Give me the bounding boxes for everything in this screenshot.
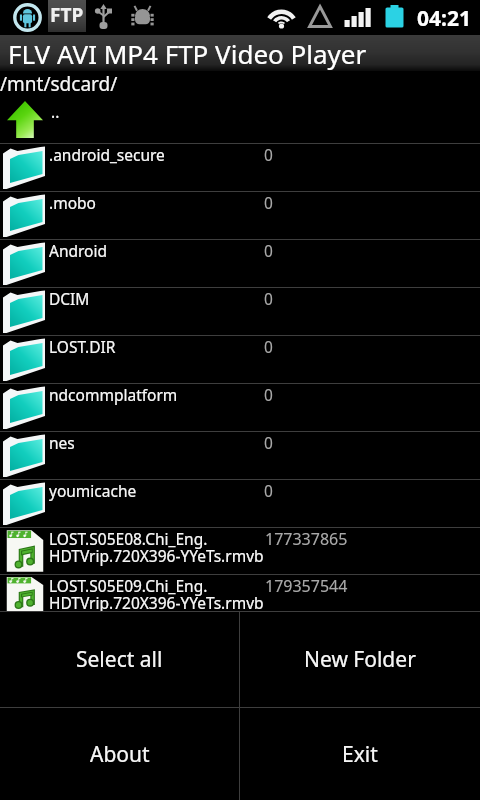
staticText: 0: [264, 384, 273, 405]
staticText: LOST.DIR: [49, 336, 116, 357]
staticText: ..: [51, 101, 60, 122]
staticText: .mobo: [49, 192, 96, 213]
other: FTP service running: [13, 3, 42, 32]
other: USB connected: [95, 4, 112, 29]
staticText: 0: [264, 336, 273, 357]
button[interactable]: ndcommplatform: [0, 384, 480, 432]
staticText: youmicache: [49, 480, 137, 501]
staticText: /mnt/sdcard/: [0, 71, 118, 96]
staticText: nes: [49, 432, 75, 453]
button[interactable]: youmicache: [0, 480, 480, 528]
button[interactable]: New Folder: [240, 612, 480, 707]
other: USB debugging: [131, 5, 154, 27]
staticText: 179357544: [265, 575, 348, 597]
staticText: 0: [264, 144, 273, 165]
staticText: New Folder: [304, 645, 416, 674]
button[interactable]: Select all: [0, 612, 239, 707]
button[interactable]: Exit: [240, 708, 480, 800]
button[interactable]: LOST.S05E08.Chi_Eng.: [0, 528, 480, 575]
staticText: Exit: [342, 740, 378, 769]
staticText: Select all: [76, 645, 163, 674]
staticText: FLV AVI MP4 FTP Video Player: [8, 36, 367, 71]
staticText: 177337865: [265, 528, 348, 550]
button[interactable]: .mobo: [0, 192, 480, 240]
other: Wi-Fi: [265, 2, 299, 30]
button[interactable]: LOST.DIR: [0, 336, 480, 384]
staticText: .android_secure: [49, 144, 165, 165]
other: GPS: [307, 4, 333, 30]
staticText: About: [90, 740, 150, 769]
staticText: Android: [49, 240, 108, 261]
staticText: 0: [264, 480, 273, 501]
button[interactable]: nes: [0, 432, 480, 480]
staticText: HDTVrip.720X396-YYeTs.rmvb: [49, 592, 264, 611]
button[interactable]: Android: [0, 240, 480, 288]
other: Cellular signal: [343, 4, 375, 30]
staticText: 0: [264, 432, 273, 453]
button[interactable]: .android_secure: [0, 144, 480, 192]
staticText: 0: [264, 288, 273, 309]
button[interactable]: DCIM: [0, 288, 480, 336]
button[interactable]: ..: [0, 96, 480, 144]
button[interactable]: LOST.S05E09.Chi_Eng.: [0, 575, 480, 612]
staticText: DCIM: [49, 288, 90, 309]
staticText: 04:21: [417, 4, 471, 33]
staticText: ndcommplatform: [49, 384, 178, 405]
staticText: LOST.S05E09.Chi_Eng.: [49, 575, 208, 596]
staticText: HDTVrip.720X396-YYeTs.rmvb: [49, 545, 264, 566]
other: Battery: [383, 3, 407, 31]
staticText: 0: [264, 192, 273, 213]
staticText: 0: [264, 240, 273, 261]
button[interactable]: About: [0, 708, 239, 800]
staticText: FTP: [50, 2, 84, 28]
staticText: LOST.S05E08.Chi_Eng.: [49, 528, 208, 549]
